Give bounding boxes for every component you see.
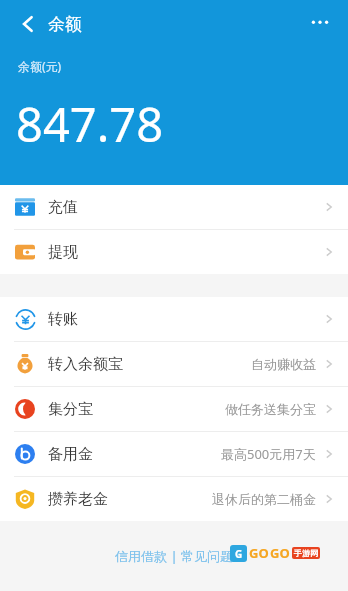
staticText: 常见问题	[181, 548, 233, 564]
button[interactable]: 转账	[0, 297, 348, 341]
staticText: 信用借款	[115, 548, 167, 564]
button[interactable]: 提现	[0, 230, 348, 274]
staticText: 充值	[48, 198, 78, 217]
staticText: 余额	[48, 14, 82, 35]
staticText: 提现	[48, 243, 78, 262]
button[interactable]: More options	[300, 4, 340, 44]
button[interactable]: 充值	[0, 185, 348, 229]
button[interactable]: 信用借款	[115, 548, 167, 564]
staticText: 手游网	[294, 548, 318, 558]
button[interactable]: 转入余额宝	[0, 342, 348, 386]
button[interactable]: Back	[8, 4, 48, 44]
button[interactable]: 集分宝	[0, 387, 348, 431]
staticText: 攒养老金	[48, 490, 108, 509]
staticText: GO	[249, 544, 269, 562]
button[interactable]: 常见问题	[181, 548, 233, 564]
staticText: |	[167, 547, 181, 565]
staticText: 做任务送集分宝	[225, 401, 316, 417]
staticText: 集分宝	[48, 400, 93, 419]
staticText: 847.78	[16, 92, 164, 156]
staticText: 自动赚收益	[251, 356, 316, 372]
staticText: G	[235, 547, 243, 561]
staticText: 转入余额宝	[48, 355, 123, 374]
staticText: GO	[270, 544, 290, 562]
staticText: 退休后的第二桶金	[212, 491, 316, 507]
staticText: 备用金	[48, 445, 93, 464]
button[interactable]: 备用金	[0, 432, 348, 476]
staticText: 转账	[48, 310, 78, 329]
button[interactable]: 攒养老金	[0, 477, 348, 521]
staticText: 余额(元)	[18, 58, 62, 74]
staticText: 最高500元用7天	[221, 445, 316, 463]
